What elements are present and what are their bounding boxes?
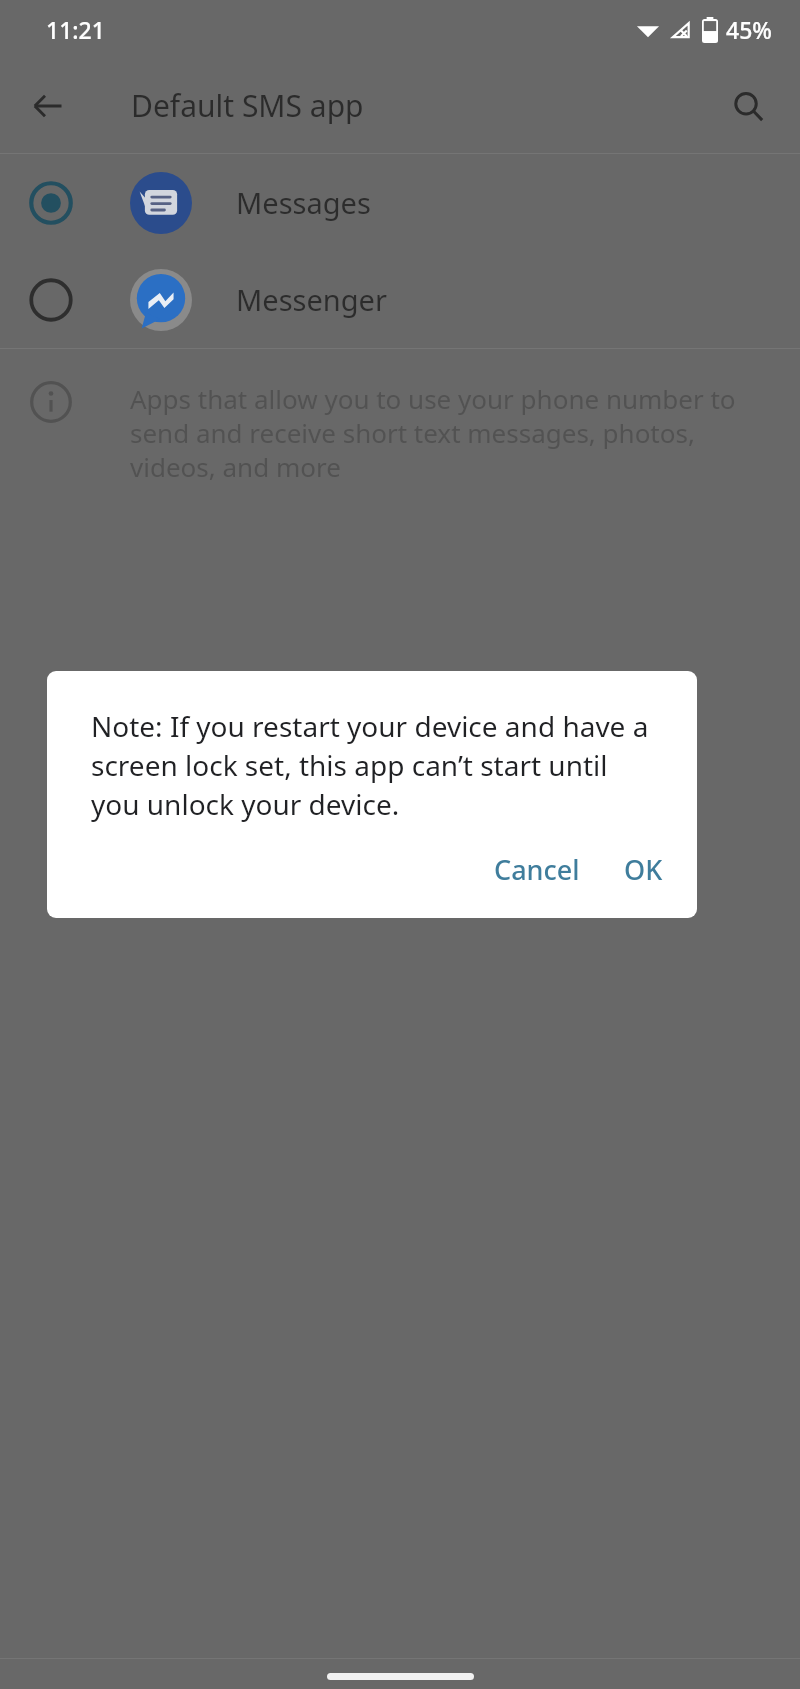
- button[interactable]: Cancel: [478, 839, 596, 900]
- button[interactable]: Search: [716, 74, 780, 138]
- staticText: Messages: [236, 183, 371, 222]
- staticText: 45%: [726, 14, 772, 45]
- staticText: Default SMS app: [131, 85, 364, 126]
- staticText: Cancel: [494, 851, 580, 888]
- staticText: Apps that allow you to use your phone nu…: [130, 381, 740, 484]
- button[interactable]: Messages: [0, 154, 800, 251]
- button[interactable]: OK: [608, 839, 679, 900]
- staticText: 11:21: [46, 14, 105, 45]
- staticText: Messenger: [236, 280, 387, 319]
- staticText: Note: If you restart your device and hav…: [91, 707, 663, 823]
- staticText: OK: [624, 851, 663, 888]
- button[interactable]: Messenger: [0, 251, 800, 348]
- button[interactable]: Back: [16, 74, 80, 138]
